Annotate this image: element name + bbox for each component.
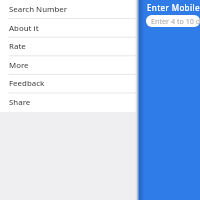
button[interactable]: Rate (0, 37, 136, 56)
button[interactable]: About it (0, 19, 136, 38)
staticText: About it (9, 23, 39, 34)
button[interactable]: Mobile number input field (146, 15, 200, 27)
staticText: Rate (9, 41, 26, 52)
staticText: More (9, 60, 29, 71)
button[interactable]: Share (0, 93, 136, 112)
staticText: Share (9, 97, 31, 108)
staticText: Feedback (9, 78, 45, 89)
staticText: Enter 4 to 10 digits (151, 16, 200, 26)
button[interactable]: Feedback (0, 74, 136, 93)
button[interactable]: More (0, 56, 136, 75)
button[interactable]: Search Number (0, 0, 136, 19)
staticText: Enter Mobile Number (147, 2, 200, 13)
staticText: Search Number (9, 4, 68, 15)
